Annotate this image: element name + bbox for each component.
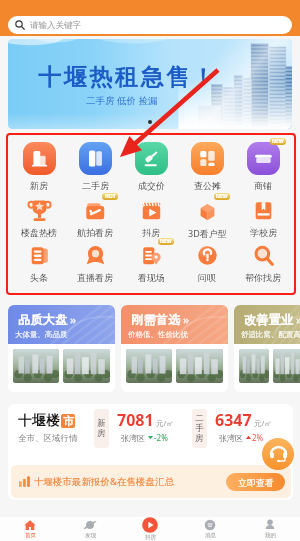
staticText: -2% [154,432,168,443]
staticText: » [70,313,77,327]
staticText: 市 [63,414,74,428]
staticText: 十堰热租急售！ [38,63,218,92]
staticText: 舒适比窝、配置高 [241,330,300,339]
staticText: » [296,313,300,327]
button[interactable]: NEW [123,244,179,283]
button[interactable]: 我的 [240,517,300,541]
staticText: 头条 [30,272,48,283]
staticText: 6347 [215,409,252,431]
button[interactable]: 请输入关键字 [8,16,292,34]
staticText: 问呗 [198,272,216,283]
staticText: NEW [216,193,228,200]
button[interactable]: 改善置业 [234,305,300,392]
staticText: 看现场 [138,272,165,283]
button[interactable]: 帮你找房 [235,244,291,283]
staticText: 品质大盘 [18,312,68,327]
staticText: NEW [160,238,172,245]
button[interactable]: 学校房 [235,199,291,238]
button[interactable]: 成交价 [123,142,179,191]
staticText: 楼盘热榜 [21,227,57,238]
button[interactable]: 品质大盘 [8,305,115,392]
staticText: 抖房 [142,227,160,238]
staticText: 张湾区 [121,433,145,443]
button[interactable]: 抖房 [123,199,179,238]
staticText: 直播看房 [77,272,113,283]
button[interactable]: 问呗 [179,244,235,283]
staticText: 十堰楼市最新报价&在售楼盘汇总 [34,475,174,488]
button[interactable]: 头条 [11,244,67,283]
staticText: 刚需首选 [131,312,181,327]
staticText: 学校房 [250,227,277,238]
button[interactable]: HOT [67,199,123,238]
staticText: 查公摊 [194,180,221,191]
button[interactable]: 刚需首选 [121,305,228,392]
button[interactable]: 在线客服 [262,438,294,470]
button[interactable]: 十堰热租急售！ [8,39,292,129]
staticText: 发现 [85,532,96,539]
button[interactable]: 直播看房 [67,244,123,283]
staticText: 3D看户型 [188,227,227,239]
button[interactable]: NEW [179,199,235,239]
staticText: 全市、区域行情 [18,433,78,444]
button[interactable]: 楼盘热榜 [11,199,67,238]
button[interactable]: 新房 [11,142,67,191]
staticText: 消息 [205,532,216,539]
button[interactable]: 查公摊 [179,142,235,191]
staticText: 二手房 低价 捡漏 [86,94,158,107]
staticText: 首页 [25,532,36,539]
staticText: 二手房 [82,180,109,191]
staticText: 航拍看房 [77,227,113,238]
button[interactable]: 二手房 [67,142,123,191]
staticText: 新房 [97,418,106,439]
staticText: 十堰楼 [18,412,61,429]
staticText: 抖房 [145,534,156,541]
button[interactable]: 发现 [60,517,120,541]
staticText: 二手房 [195,413,204,444]
staticText: 价格低、性价比优 [128,330,188,339]
staticText: 改善置业 [244,312,294,327]
staticText: 大体量、高品质 [15,330,68,339]
staticText: 帮你找房 [245,272,281,283]
staticText: 请输入关键字 [30,20,81,31]
staticText: 元/㎡ [156,418,174,428]
button[interactable]: NEW [235,142,291,191]
button[interactable]: 首页 [0,517,60,541]
staticText: 商铺 [254,180,272,191]
button[interactable]: 立即查看 [226,473,285,491]
staticText: 新房 [30,180,48,191]
button[interactable]: 消息 [180,517,240,541]
staticText: 元/㎡ [254,418,272,428]
button[interactable]: 抖房 [120,517,180,541]
staticText: 成交价 [138,180,165,191]
button[interactable]: 十堰楼市最新报价&在售楼盘汇总 [11,465,291,498]
staticText: 7081 [117,409,154,431]
staticText: NEW [272,138,284,145]
staticText: HOT [105,193,116,200]
staticText: » [183,313,190,327]
staticText: 张湾区 [219,433,243,443]
staticText: 我的 [265,532,276,539]
staticText: 2% [252,432,264,443]
staticText: 立即查看 [238,477,274,488]
